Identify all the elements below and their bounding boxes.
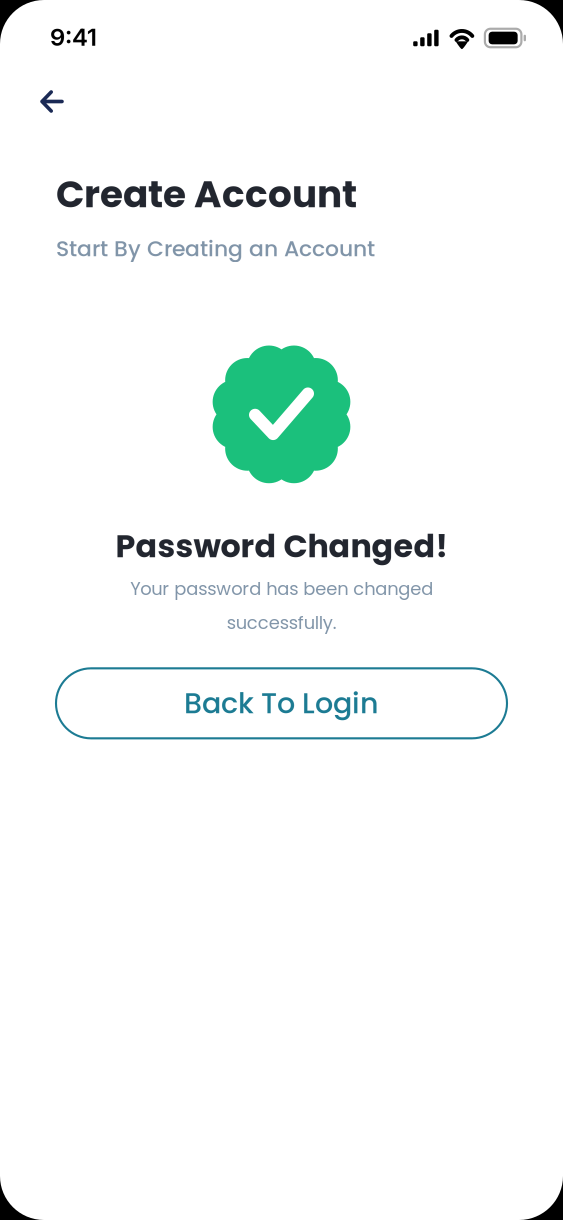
staticText: 9:41 — [50, 22, 97, 51]
staticText: Back To Login — [184, 683, 379, 723]
button[interactable]: Back To Login — [56, 668, 507, 738]
staticText: Your password has been changed successfu… — [130, 576, 433, 635]
staticText: Password Changed! — [115, 524, 447, 568]
staticText: Create Account — [56, 168, 357, 220]
button[interactable]: Back — [28, 80, 76, 123]
staticText: Start By Creating an Account — [56, 233, 375, 264]
